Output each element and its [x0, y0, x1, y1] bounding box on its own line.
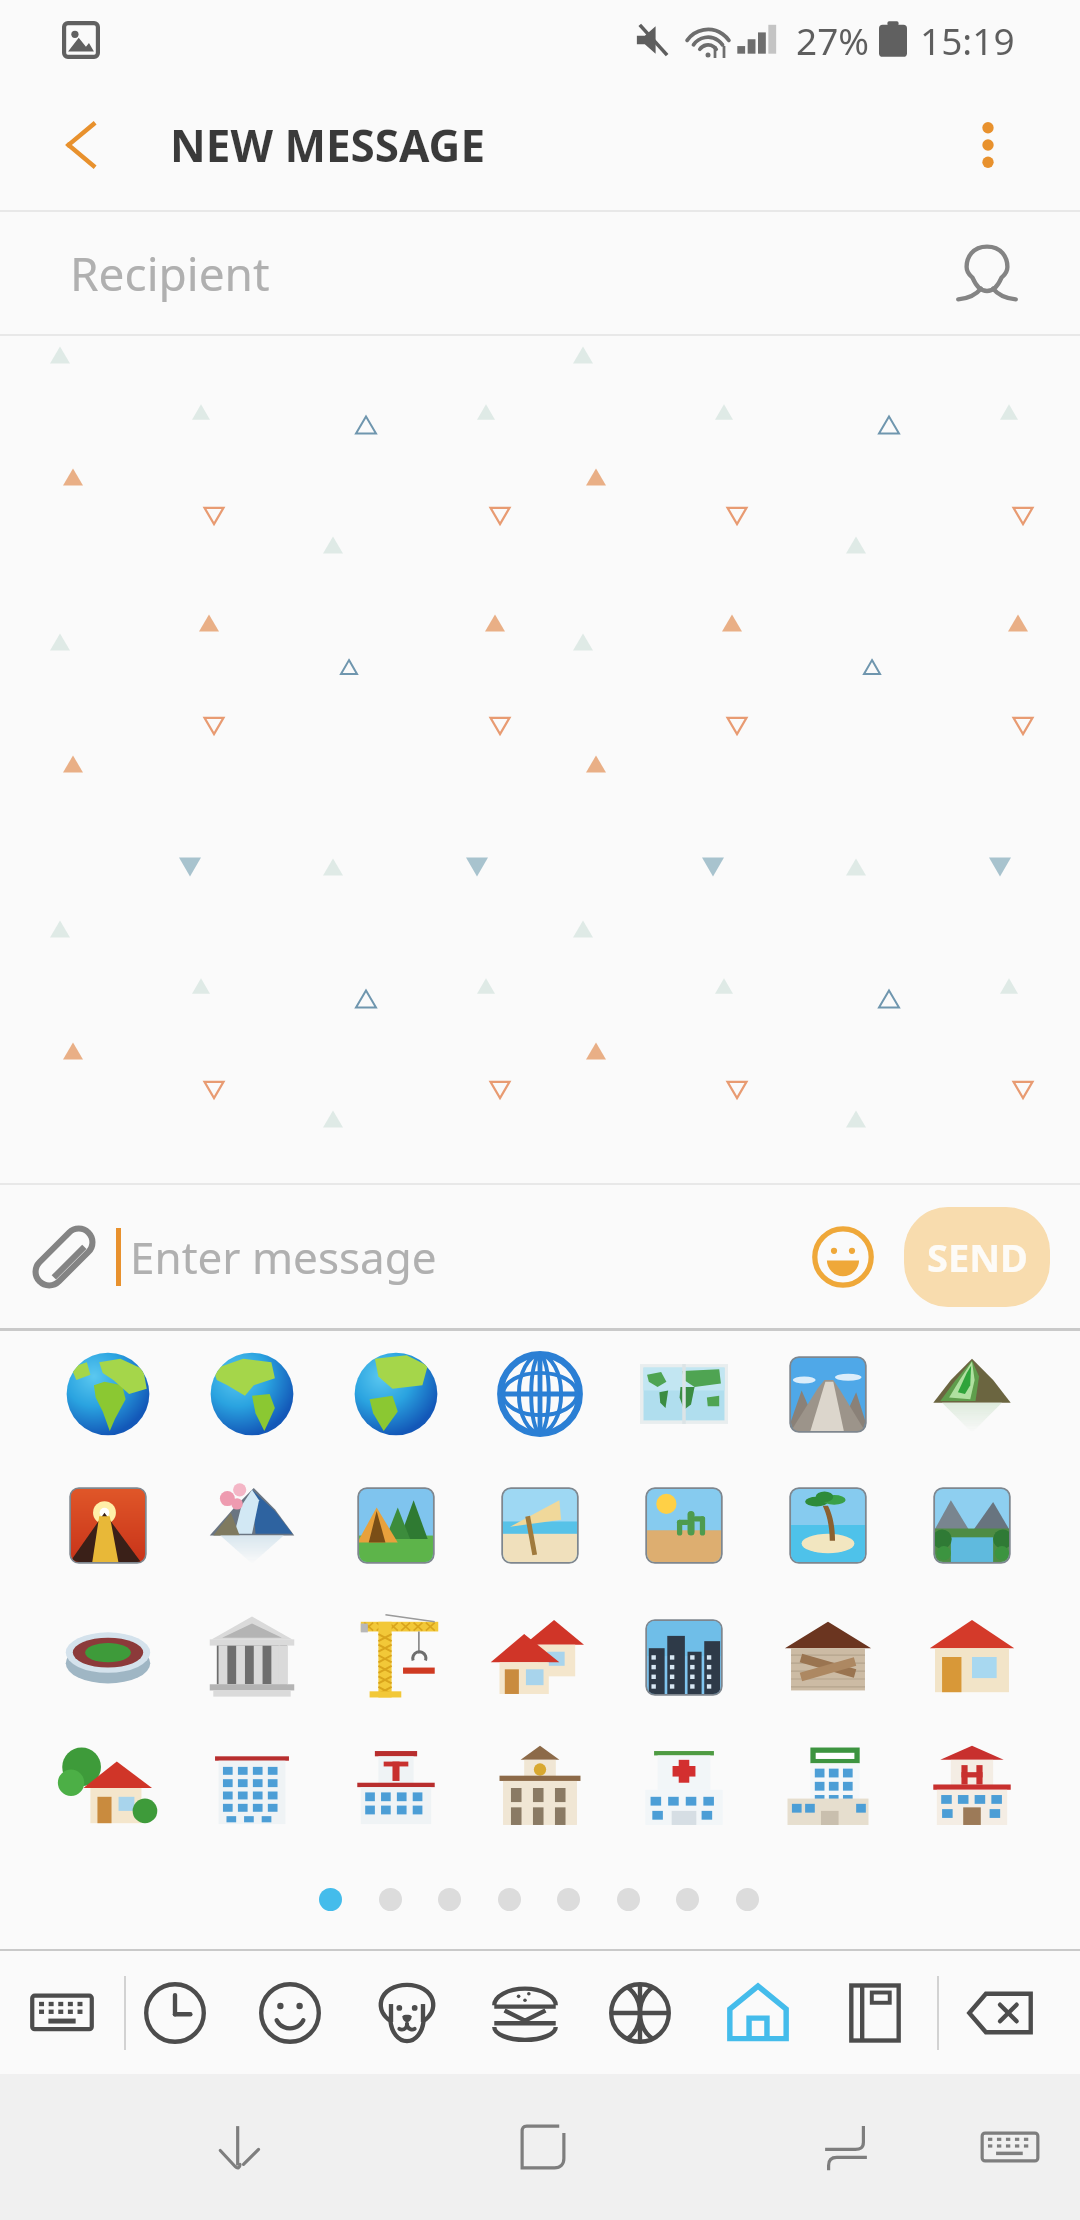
button[interactable]: Page 3	[438, 1888, 461, 1911]
button[interactable]: Classical building	[180, 1591, 324, 1722]
button[interactable]: Attach	[16, 1209, 112, 1305]
button[interactable]: Smileys	[233, 1951, 347, 2075]
button[interactable]: Mount Fuji	[756, 1328, 900, 1459]
button[interactable]: Earth globe Asia-Australia	[324, 1328, 468, 1459]
button[interactable]: Add recipient	[939, 225, 1035, 321]
button[interactable]: National park	[900, 1459, 1044, 1590]
button[interactable]: Japanese post office	[324, 1722, 468, 1853]
button[interactable]: Symbols	[818, 1951, 932, 2075]
button[interactable]: Camping	[324, 1459, 468, 1590]
button[interactable]: Page 2	[379, 1888, 402, 1911]
button[interactable]: Recipient field	[0, 212, 1080, 334]
button[interactable]: Delete	[943, 1951, 1057, 2075]
button[interactable]: Beach with umbrella	[468, 1459, 612, 1590]
button[interactable]: Volcano	[36, 1459, 180, 1590]
button[interactable]: House	[900, 1591, 1044, 1722]
button[interactable]: Page 4	[498, 1888, 521, 1911]
button[interactable]: Hotel	[900, 1722, 1044, 1853]
button[interactable]: Page 5	[557, 1888, 580, 1911]
staticText: 27%	[796, 15, 870, 65]
button[interactable]: Animals	[350, 1951, 464, 2075]
button[interactable]: Switch keyboard	[940, 2074, 1080, 2220]
button[interactable]: House with garden	[36, 1722, 180, 1853]
button[interactable]: Home	[473, 2074, 613, 2220]
button[interactable]: Page 1	[319, 1888, 342, 1911]
button[interactable]: Page 7	[676, 1888, 699, 1911]
staticText: SEND	[927, 1231, 1028, 1283]
button[interactable]: Places	[701, 1951, 815, 2075]
staticText: Recipient	[70, 242, 270, 305]
button[interactable]: Page 6	[617, 1888, 640, 1911]
staticText: NEW MESSAGE	[170, 115, 486, 175]
button[interactable]: Earth globe Europe-Africa	[36, 1328, 180, 1459]
button[interactable]: Hospital	[612, 1722, 756, 1853]
button[interactable]: Desert	[612, 1459, 756, 1590]
button[interactable]: Recent	[118, 1951, 232, 2075]
button[interactable]: Snow-capped mountain	[180, 1459, 324, 1590]
button[interactable]: Cityscape	[612, 1591, 756, 1722]
button[interactable]: Mountain	[900, 1328, 1044, 1459]
button[interactable]: SEND	[904, 1207, 1050, 1307]
button[interactable]: More options	[938, 95, 1038, 195]
button[interactable]: Keyboard	[5, 1951, 119, 2075]
button[interactable]: World map	[612, 1328, 756, 1459]
button[interactable]: Earth globe Americas	[180, 1328, 324, 1459]
button[interactable]: Recents	[776, 2074, 916, 2220]
button[interactable]: Office building	[180, 1722, 324, 1853]
staticText: 15:19	[920, 15, 1015, 65]
staticText: Enter message	[130, 1227, 437, 1287]
button[interactable]: Stadium	[36, 1591, 180, 1722]
button[interactable]: Activities	[583, 1951, 697, 2075]
button[interactable]: Bank	[756, 1722, 900, 1853]
button[interactable]: Building construction	[324, 1591, 468, 1722]
button[interactable]: Back	[32, 95, 132, 195]
button[interactable]: Hide keyboard	[170, 2074, 310, 2220]
button[interactable]: Desert island	[756, 1459, 900, 1590]
button[interactable]: Derelict house	[756, 1591, 900, 1722]
button[interactable]: European post office	[468, 1722, 612, 1853]
button[interactable]: Emoji	[798, 1212, 888, 1302]
button[interactable]: Page 8	[736, 1888, 759, 1911]
button[interactable]: Globe with meridians	[468, 1328, 612, 1459]
button[interactable]: Food	[468, 1951, 582, 2075]
button[interactable]: Houses	[468, 1591, 612, 1722]
